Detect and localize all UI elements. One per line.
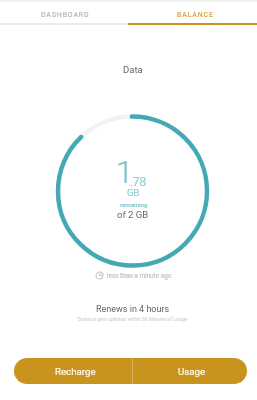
staticText: GB [127, 187, 140, 198]
staticText: 1 [116, 154, 134, 190]
staticText: Balance gets updated within 60 Minutes o… [78, 316, 188, 322]
staticText: Data [123, 64, 143, 75]
staticText: remaining [120, 201, 148, 208]
button[interactable]: DASHBOARD [0, 0, 128, 25]
button[interactable]: Recharge [14, 358, 132, 384]
staticText: Usage [178, 366, 206, 377]
button[interactable]: BALANCE [128, 0, 257, 25]
staticText: Renews in 4 hours [96, 304, 170, 315]
staticText: less than a minute ago [107, 272, 172, 280]
staticText: Recharge [55, 366, 96, 377]
button[interactable]: Usage [133, 358, 247, 384]
staticText: DASHBOARD [41, 11, 90, 19]
staticText: of 2 GB [117, 209, 149, 220]
staticText: .78 [130, 175, 147, 189]
staticText: BALANCE [177, 11, 214, 19]
